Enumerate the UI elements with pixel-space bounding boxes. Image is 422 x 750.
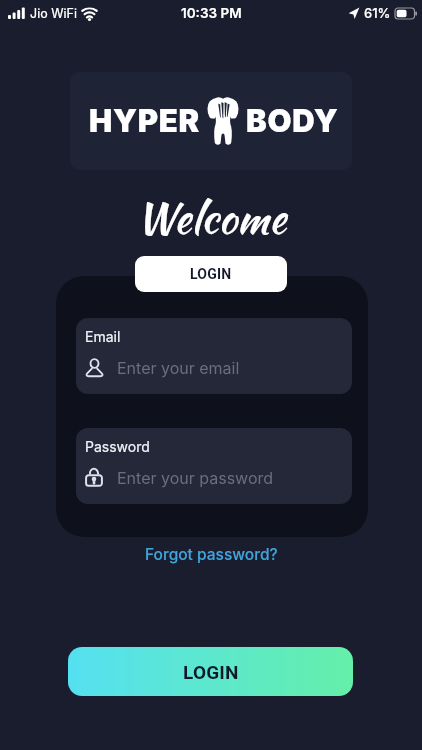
staticText: Enter your email [117, 358, 240, 377]
staticText: BODY [246, 102, 339, 140]
staticText: LOGIN [183, 661, 239, 683]
staticText: 61% [364, 5, 391, 21]
staticText: Password [85, 438, 150, 455]
button[interactable]: Password [76, 428, 352, 504]
button[interactable]: Email [76, 318, 352, 394]
staticText: Jio WiFi [30, 6, 77, 21]
staticText: Forgot password? [145, 545, 278, 564]
staticText: HYPER [89, 102, 200, 140]
button[interactable]: LOGIN [135, 256, 287, 292]
staticText: 10:33 PM [181, 5, 242, 21]
staticText: Welcome [136, 187, 286, 248]
staticText: Email [85, 328, 121, 345]
button[interactable]: Forgot password? [135, 540, 287, 568]
button[interactable]: LOGIN [68, 647, 353, 696]
staticText: Enter your password [117, 468, 274, 487]
staticText: LOGIN [190, 266, 232, 282]
